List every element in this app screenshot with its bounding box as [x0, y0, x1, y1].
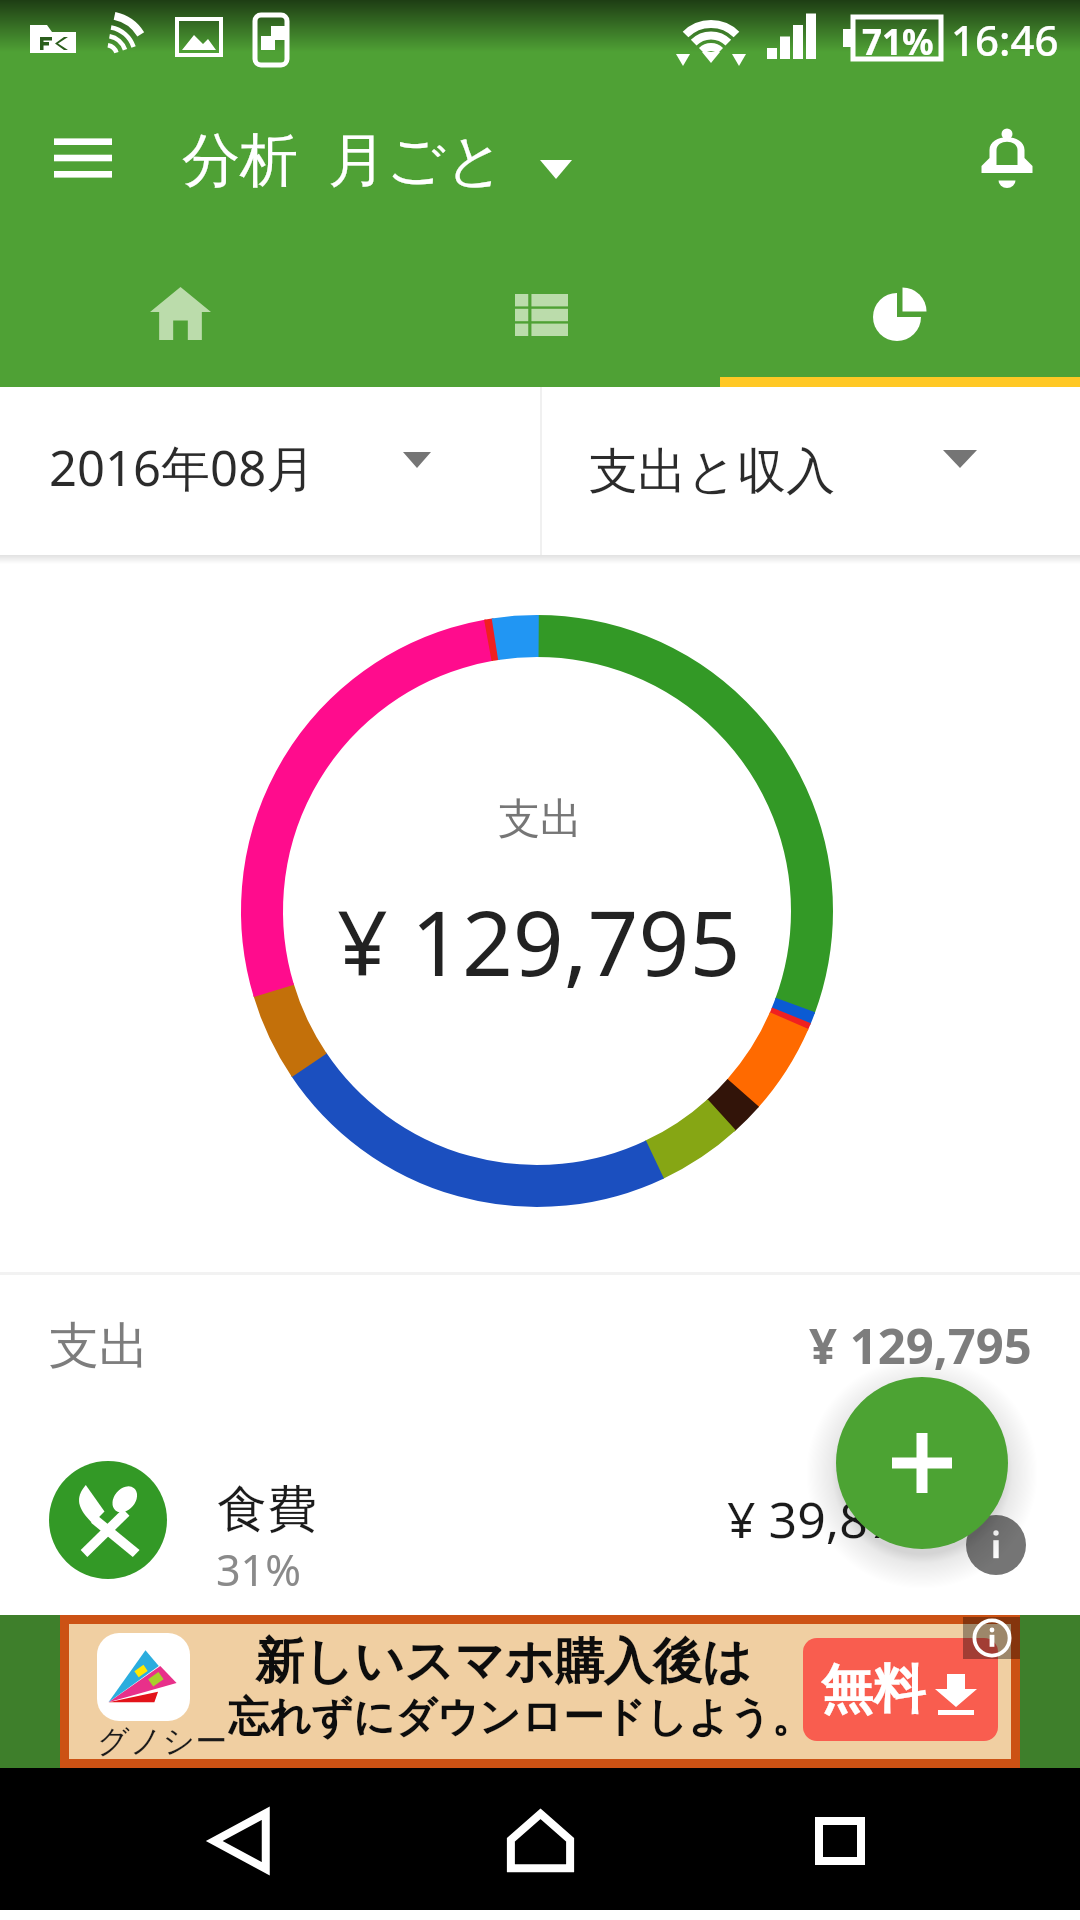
button[interactable]: Info	[966, 1515, 1026, 1575]
staticText: 71%	[862, 18, 934, 66]
button[interactable]: 食費	[0, 1425, 1080, 1615]
button[interactable]: Back	[140, 1768, 340, 1910]
button[interactable]: 2016年08月	[0, 387, 540, 555]
staticText: ¥ 129,795	[809, 1312, 1032, 1379]
button[interactable]: Home tab	[0, 250, 360, 387]
staticText: 食費	[217, 1478, 317, 1541]
staticText: 31%	[216, 1540, 301, 1599]
staticText: 忘れずにダウンロードしよう。	[228, 1692, 813, 1744]
button[interactable]: Recents	[740, 1768, 940, 1910]
button[interactable]: Home	[440, 1768, 640, 1910]
button[interactable]: List tab	[360, 250, 720, 387]
staticText: 2016年08月	[49, 434, 316, 501]
button[interactable]: Add	[836, 1377, 1008, 1549]
button[interactable]: 無料	[803, 1638, 998, 1741]
staticText: 支出と収入	[589, 441, 836, 503]
button[interactable]: Menu	[28, 103, 138, 213]
button[interactable]: Ad info	[963, 1617, 1020, 1659]
staticText: ¥ 39,877	[727, 1485, 925, 1553]
button[interactable]: Analysis tab	[720, 250, 1080, 387]
staticText: 16:46	[951, 11, 1059, 68]
staticText: グノシー	[97, 1721, 228, 1761]
staticText: 新しいスマホ購入後は	[255, 1631, 752, 1693]
staticText: 支出	[498, 793, 582, 846]
staticText: 分析 月ごと	[182, 118, 505, 197]
button[interactable]: グノシー	[0, 1615, 1080, 1768]
button[interactable]: 支出	[0, 1275, 1080, 1425]
button[interactable]: Notifications	[952, 106, 1062, 216]
staticText: 無料	[821, 1657, 925, 1723]
button[interactable]: 支出と収入	[542, 387, 789, 555]
staticText: 支出	[49, 1315, 149, 1378]
staticText: ¥ 129,795	[337, 881, 741, 1002]
